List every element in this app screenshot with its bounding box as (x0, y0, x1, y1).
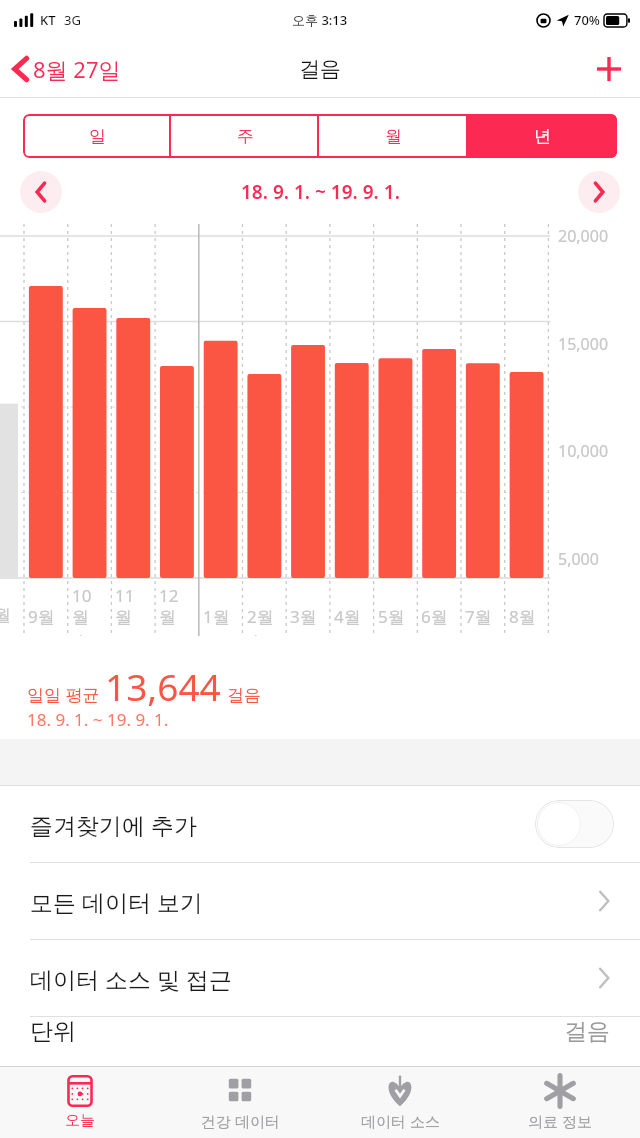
button[interactable]: 오늘 (0, 1067, 160, 1138)
staticText: 20,000 (558, 225, 609, 247)
button[interactable]: 데이터 소스 및 접근 (0, 940, 640, 1016)
staticText: 모든 데이터 보기 (30, 886, 203, 917)
staticText: 걸음 (227, 685, 261, 706)
staticText: 9월 (28, 605, 55, 628)
staticText: 15,000 (558, 333, 609, 355)
button[interactable]: 이전 (20, 171, 62, 213)
button[interactable]: 8월 27일 (0, 48, 131, 90)
staticText: 3월 (290, 605, 317, 628)
button[interactable]: 단위 (0, 1017, 640, 1057)
staticText: 즐겨찾기에 추가 (30, 809, 197, 840)
staticText: 6월 (421, 605, 448, 628)
staticText: 걸음 (564, 1017, 610, 1046)
staticText: KT (40, 11, 56, 29)
staticText: 7월 (465, 605, 492, 628)
button[interactable]: 즐겨찾기에 추가 (0, 786, 640, 862)
staticText: 년 (534, 126, 551, 147)
staticText: 데이터 소스 (361, 1111, 440, 1131)
button[interactable]: 주 (171, 114, 319, 158)
staticText: 2월 (247, 605, 274, 628)
button[interactable]: 년 (468, 114, 617, 158)
staticText: 단위 (30, 1017, 76, 1046)
staticText: 주 (237, 126, 254, 147)
staticText: 걸음 (299, 56, 341, 82)
staticText: 데이터 소스 및 접근 (30, 963, 232, 994)
staticText: 10 월 (72, 584, 92, 628)
staticText: 5월 (378, 605, 405, 628)
staticText: 5,000 (558, 548, 599, 570)
staticText: 10,000 (558, 440, 609, 462)
staticText: 4월 (334, 605, 361, 628)
staticText: 2018년 (28, 630, 84, 653)
staticText: 2019년 (203, 630, 259, 653)
button[interactable]: 추가 (578, 44, 640, 94)
staticText: 오후 3:13 (292, 11, 348, 29)
button[interactable]: 즐겨찾기에 추가 토글 (535, 800, 614, 848)
staticText: 월 (0, 605, 11, 626)
staticText: 12 월 (159, 584, 179, 628)
button[interactable]: 월 (319, 114, 468, 158)
staticText: 의료 정보 (528, 1111, 592, 1131)
staticText: 18. 9. 1. ~ 19. 9. 1. (27, 708, 169, 731)
staticText: 일일 평균 (27, 683, 100, 706)
staticText: 1월 (203, 605, 230, 628)
staticText: 월 (385, 126, 402, 147)
staticText: 70% (574, 11, 600, 29)
button[interactable]: 모든 데이터 보기 (0, 863, 640, 939)
staticText: 건강 데이터 (201, 1111, 280, 1131)
button[interactable]: 일 (23, 114, 171, 158)
staticText: 8월 27일 (33, 54, 121, 84)
staticText: 18. 9. 1. ~ 19. 9. 1. (241, 179, 400, 205)
staticText: 3G (64, 11, 81, 29)
staticText: 오늘 (65, 1111, 95, 1130)
button[interactable]: 의료 정보 (480, 1067, 640, 1138)
button[interactable]: 건강 데이터 (160, 1067, 320, 1138)
staticText: 13,644 (105, 661, 221, 711)
staticText: 일 (89, 126, 106, 147)
staticText: 11 월 (115, 584, 135, 628)
staticText: 8월 (509, 605, 536, 628)
button[interactable]: 데이터 소스 (320, 1067, 480, 1138)
button[interactable]: 다음 (578, 171, 620, 213)
